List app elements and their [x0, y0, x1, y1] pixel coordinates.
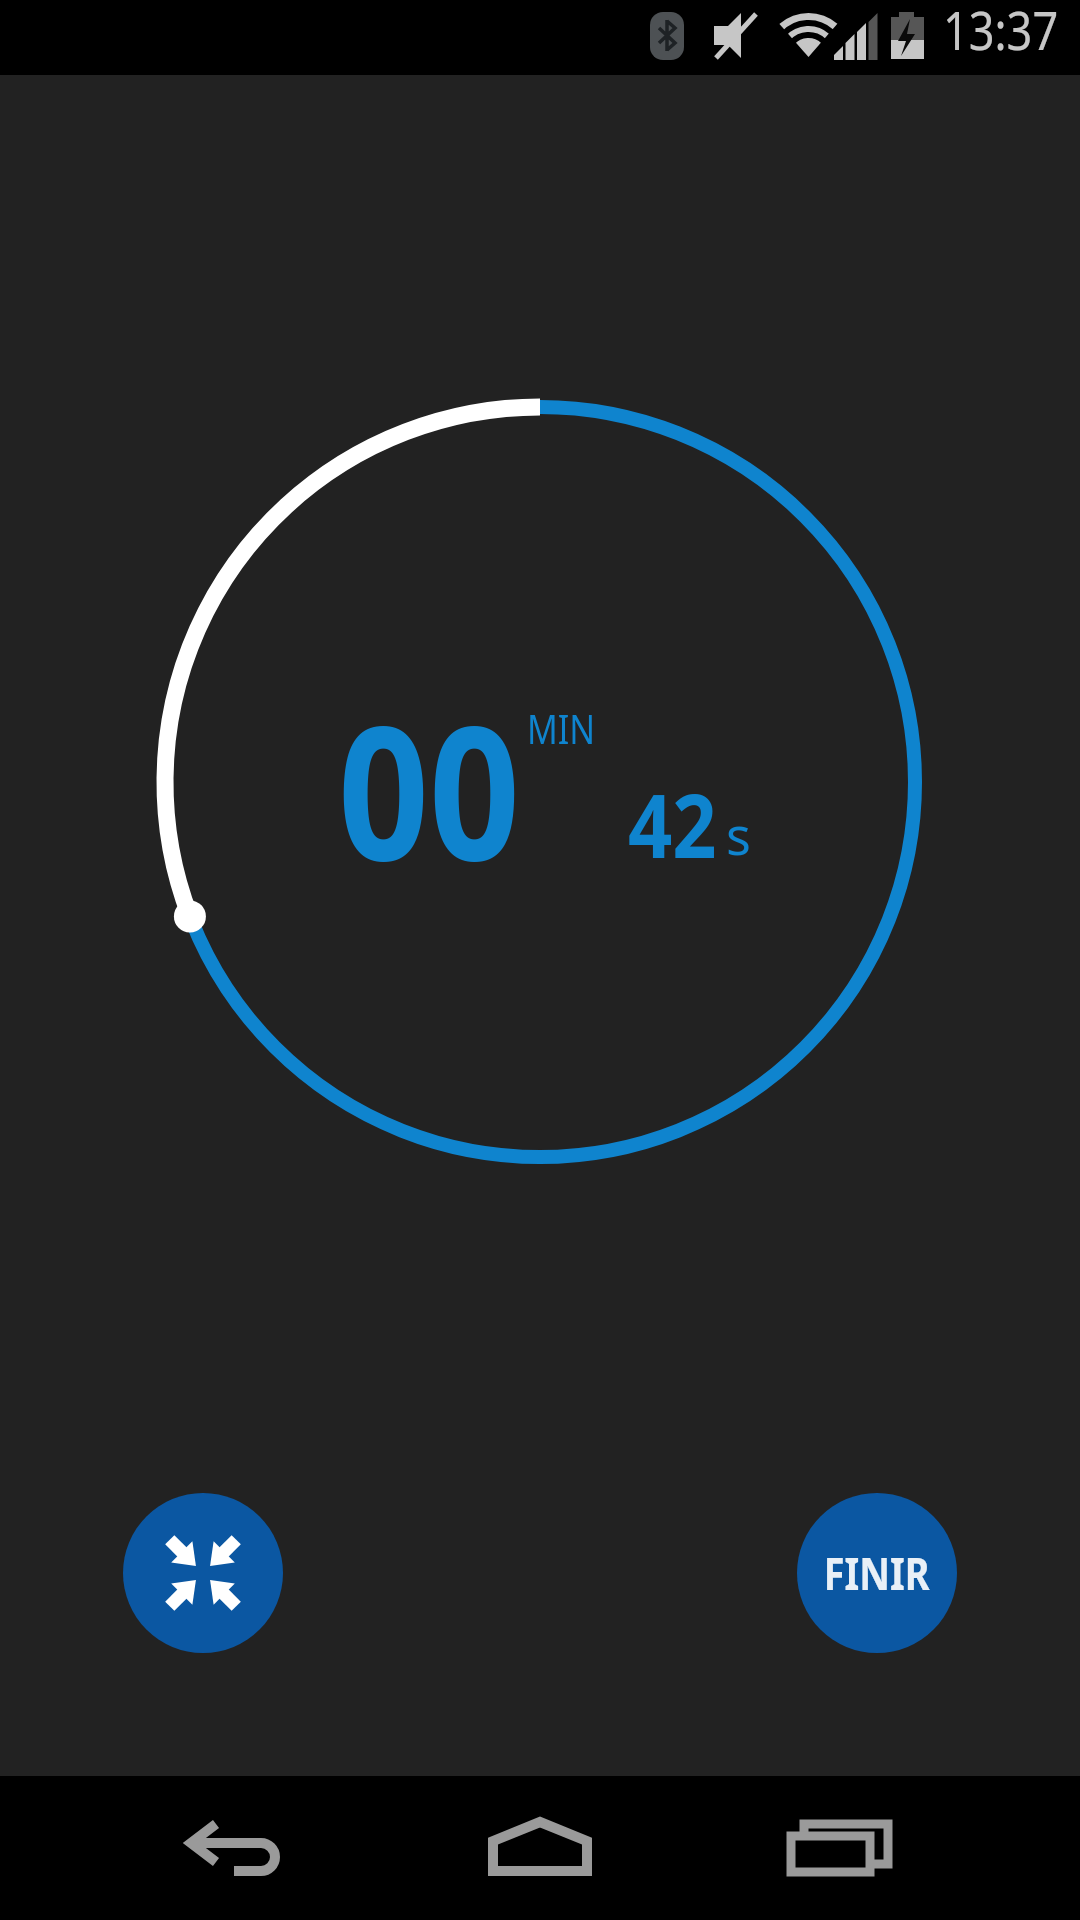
staticText: 42 [628, 764, 717, 884]
button[interactable] [465, 1800, 615, 1896]
staticText: MIN [527, 701, 596, 755]
staticText: s [726, 799, 751, 870]
button[interactable] [165, 1800, 315, 1896]
button[interactable]: FINIR [797, 1493, 957, 1653]
staticText: 00 [338, 662, 520, 914]
staticText: FINIR [824, 1543, 930, 1603]
button[interactable] [123, 1493, 283, 1653]
button[interactable] [765, 1800, 915, 1896]
staticText: 13:37 [943, 0, 1059, 65]
